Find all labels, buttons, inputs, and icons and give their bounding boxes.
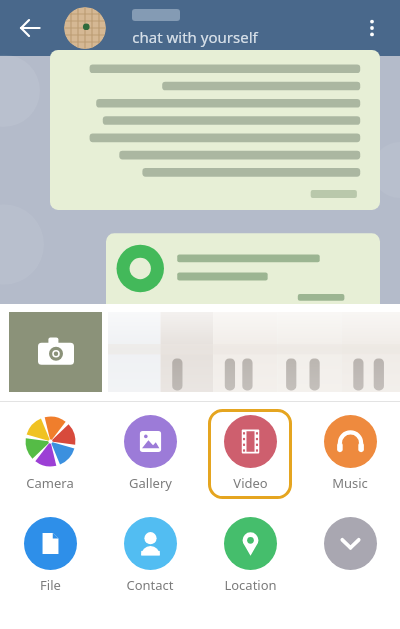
button[interactable]: Video xyxy=(208,409,292,499)
button[interactable]: Music xyxy=(308,409,392,499)
staticText: Contact xyxy=(126,576,174,594)
button[interactable]: More options xyxy=(348,4,396,52)
button[interactable]: Location xyxy=(208,511,292,601)
button[interactable]: Camera xyxy=(8,409,92,499)
staticText: Location xyxy=(224,576,277,594)
staticText: Camera xyxy=(26,474,74,492)
staticText: chat with yourself xyxy=(132,27,258,47)
button[interactable]: Contact xyxy=(108,511,192,601)
button[interactable]: Gallery xyxy=(108,409,192,499)
button[interactable]: File xyxy=(8,511,92,601)
staticText: Video xyxy=(233,474,268,492)
button[interactable]: Collapse attachment panel xyxy=(308,511,392,601)
button[interactable]: Back xyxy=(6,4,54,52)
staticText: Music xyxy=(332,474,368,492)
staticText: File xyxy=(40,576,61,594)
button[interactable]: Take photo xyxy=(9,312,102,392)
staticText: Gallery xyxy=(129,474,172,492)
button[interactable] xyxy=(108,312,400,392)
button[interactable]: Profile photo xyxy=(64,7,106,49)
